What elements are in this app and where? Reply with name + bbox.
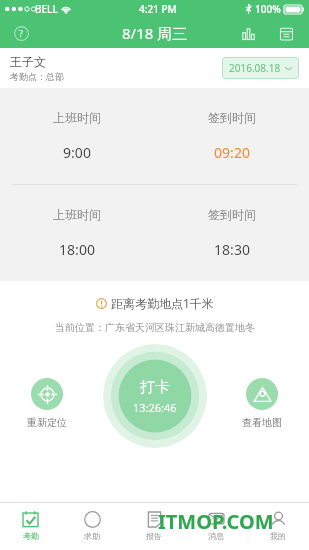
staticText: 上班时间	[53, 110, 101, 125]
button[interactable]: 查看地图	[231, 378, 293, 429]
staticText: 2016.08.18	[229, 61, 281, 75]
button[interactable]: 重新定位	[16, 378, 78, 429]
button[interactable]: Calendar	[273, 20, 299, 46]
button[interactable]: 报告	[123, 503, 185, 548]
button[interactable]: 我的	[247, 503, 309, 548]
staticText: 查看地图	[242, 416, 282, 429]
staticText: 18:00	[59, 240, 95, 259]
staticText: 签到时间	[208, 110, 256, 125]
button[interactable]: 考勤	[0, 503, 61, 548]
staticText: 考勤点：总部	[10, 71, 64, 82]
button[interactable]: 消息	[185, 503, 247, 548]
staticText: 4:21 PM	[139, 2, 177, 16]
staticText: 100%	[255, 2, 281, 16]
staticText: 8/18 周三	[122, 23, 188, 43]
staticText: 当前位置：广东省天河区珠江新城高德置地冬	[55, 321, 255, 334]
button[interactable]: Statistics	[235, 20, 261, 46]
staticText: 报告	[146, 531, 162, 541]
button[interactable]: Help	[8, 20, 34, 46]
staticText: 18:30	[214, 240, 250, 259]
staticText: 王子文	[10, 54, 46, 69]
staticText: 考勤	[23, 531, 39, 541]
staticText: 重新定位	[27, 416, 67, 429]
staticText: 消息	[208, 531, 224, 541]
button[interactable]: 求助	[61, 503, 123, 548]
staticText: ITMOP.COM	[158, 508, 274, 535]
button[interactable]: 2016.08.18	[222, 57, 299, 79]
staticText: 求助	[84, 531, 100, 541]
staticText: 签到时间	[208, 207, 256, 222]
staticText: 13:26:46	[133, 400, 177, 415]
staticText: 9:00	[63, 143, 91, 162]
staticText: ?	[19, 27, 23, 39]
staticText: 09:20	[214, 143, 250, 162]
staticText: 上班时间	[53, 207, 101, 222]
staticText: 我的	[270, 531, 286, 541]
staticText: 距离考勤地点1千米	[111, 295, 214, 311]
staticText: 打卡	[140, 378, 170, 397]
staticText: BELL	[35, 2, 58, 16]
button[interactable]: 打卡	[103, 344, 207, 448]
